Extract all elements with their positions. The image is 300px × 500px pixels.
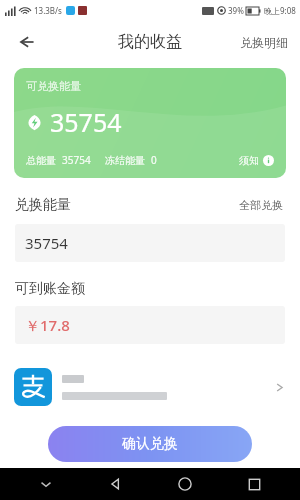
staticText: 确认兑换: [122, 435, 178, 453]
staticText: 0: [151, 153, 157, 167]
button[interactable]: 可兑换能量: [14, 68, 286, 178]
button[interactable]: 确认兑换: [48, 426, 252, 462]
staticText: 兑换明细: [240, 35, 288, 50]
button[interactable]: Back: [8, 24, 44, 60]
staticText: 晚上9:08: [264, 5, 296, 16]
button[interactable]: Back: [91, 468, 139, 500]
button[interactable]: 须知: [239, 154, 274, 167]
button[interactable]: Recents: [230, 468, 278, 500]
button[interactable]: ￥17.8: [15, 306, 285, 344]
staticText: 35754: [50, 105, 122, 139]
staticText: 可兑换能量: [26, 79, 81, 93]
staticText: 兑换能量: [15, 196, 71, 214]
button[interactable]: Hide: [22, 468, 70, 500]
button[interactable]: [0, 362, 300, 412]
staticText: ￥17.8: [25, 315, 70, 335]
staticText: 35754: [25, 233, 68, 253]
button[interactable]: Home: [161, 468, 209, 500]
button[interactable]: 兑换明细: [228, 25, 300, 60]
staticText: 须知: [239, 154, 259, 167]
button[interactable]: 35754: [15, 224, 285, 262]
button[interactable]: 全部兑换: [237, 194, 285, 216]
staticText: 39%: [228, 5, 244, 16]
staticText: 全部兑换: [239, 198, 283, 212]
staticText: 35754: [62, 153, 91, 167]
staticText: 冻结能量: [105, 154, 145, 167]
staticText: 13.3B/s: [34, 5, 62, 16]
staticText: 可到账金额: [15, 280, 85, 298]
staticText: 总能量: [26, 154, 56, 167]
staticText: 我的收益: [118, 32, 182, 52]
